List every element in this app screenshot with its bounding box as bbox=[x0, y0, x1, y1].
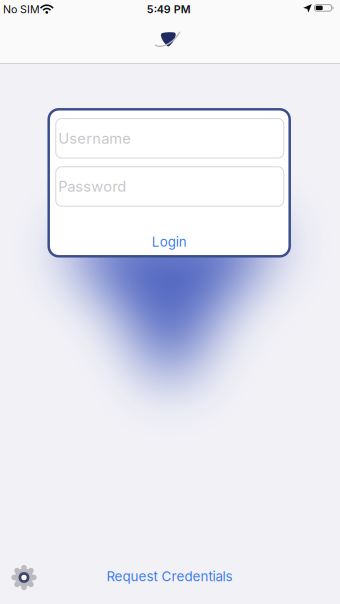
staticText: 5:49 PM bbox=[147, 3, 191, 16]
staticText: No SIM bbox=[3, 3, 40, 16]
staticText: Password bbox=[58, 178, 126, 195]
button[interactable]: Password bbox=[55, 166, 284, 207]
staticText: Login bbox=[152, 234, 187, 250]
button[interactable]: Request Credentials bbox=[106, 569, 232, 584]
staticText: Username bbox=[58, 130, 131, 147]
button[interactable]: Username bbox=[55, 118, 284, 159]
staticText: Request Credentials bbox=[106, 569, 232, 584]
button[interactable]: Login bbox=[152, 234, 187, 250]
button[interactable]: Settings bbox=[6, 559, 42, 595]
